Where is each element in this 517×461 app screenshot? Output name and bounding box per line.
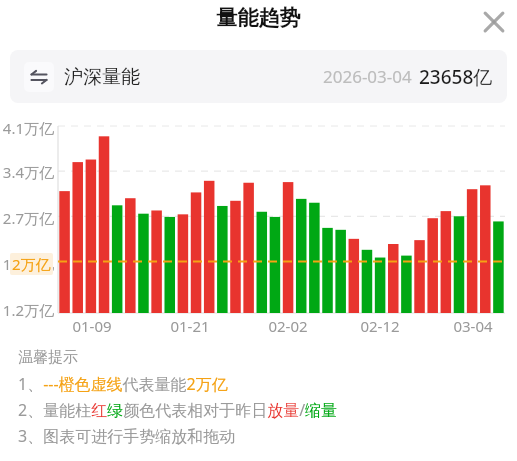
staticText: 01-09 [62,316,122,336]
staticText: 温馨提示 [18,348,78,367]
staticText: 2万亿 [12,254,51,274]
staticText: 03-04 [443,316,503,336]
staticText: 1、---橙色虚线代表量能2万亿 [18,373,228,395]
staticText: 沪深量能 [64,65,140,89]
staticText: 1.3万亿 [0,254,54,274]
staticText: 3.4万亿 [0,162,54,182]
staticText: 02-12 [350,316,410,336]
button[interactable]: Close [474,2,514,42]
staticText: 2、量能柱红绿颜色代表相对于昨日放量/缩量 [18,399,338,421]
staticText: 23658亿 [419,64,493,90]
staticText: 01-21 [160,316,220,336]
staticText: 2.7万亿 [0,208,54,228]
staticText: 2026-03-04 [323,65,412,88]
staticText: 02-02 [258,316,318,336]
staticText: 4.1万亿 [0,118,54,138]
staticText: 1.2万亿 [0,300,54,320]
staticText: 量能趋势 [0,5,517,31]
staticText: 3、图表可进行手势缩放和拖动 [18,425,236,447]
button[interactable]: 沪深量能 [10,50,507,103]
